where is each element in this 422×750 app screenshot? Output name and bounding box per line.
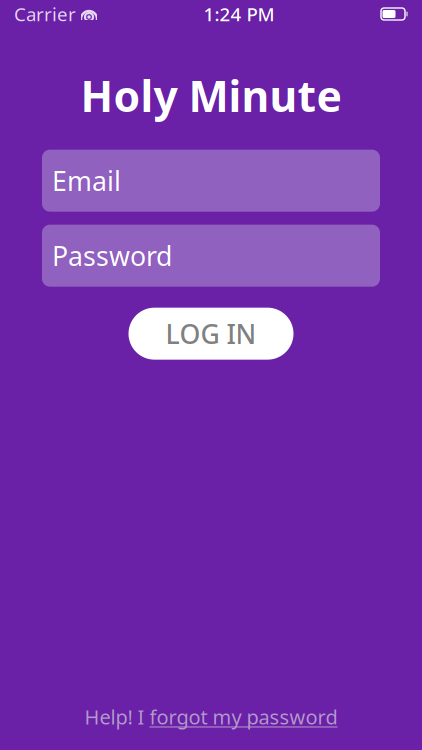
staticText: Carrier — [14, 2, 76, 26]
button[interactable]: Password — [42, 225, 380, 287]
staticText: Holy Minute — [80, 67, 341, 124]
button[interactable]: Help! I — [64, 697, 357, 736]
staticText: forgot my password — [149, 703, 337, 730]
staticText: Help! I — [84, 703, 149, 730]
staticText: LOG IN — [165, 316, 256, 351]
staticText: Email — [52, 163, 121, 198]
staticText: 1:24 PM — [203, 2, 274, 26]
button[interactable]: LOG IN — [128, 308, 293, 360]
staticText: Password — [52, 238, 172, 273]
button[interactable]: Email — [42, 150, 380, 212]
